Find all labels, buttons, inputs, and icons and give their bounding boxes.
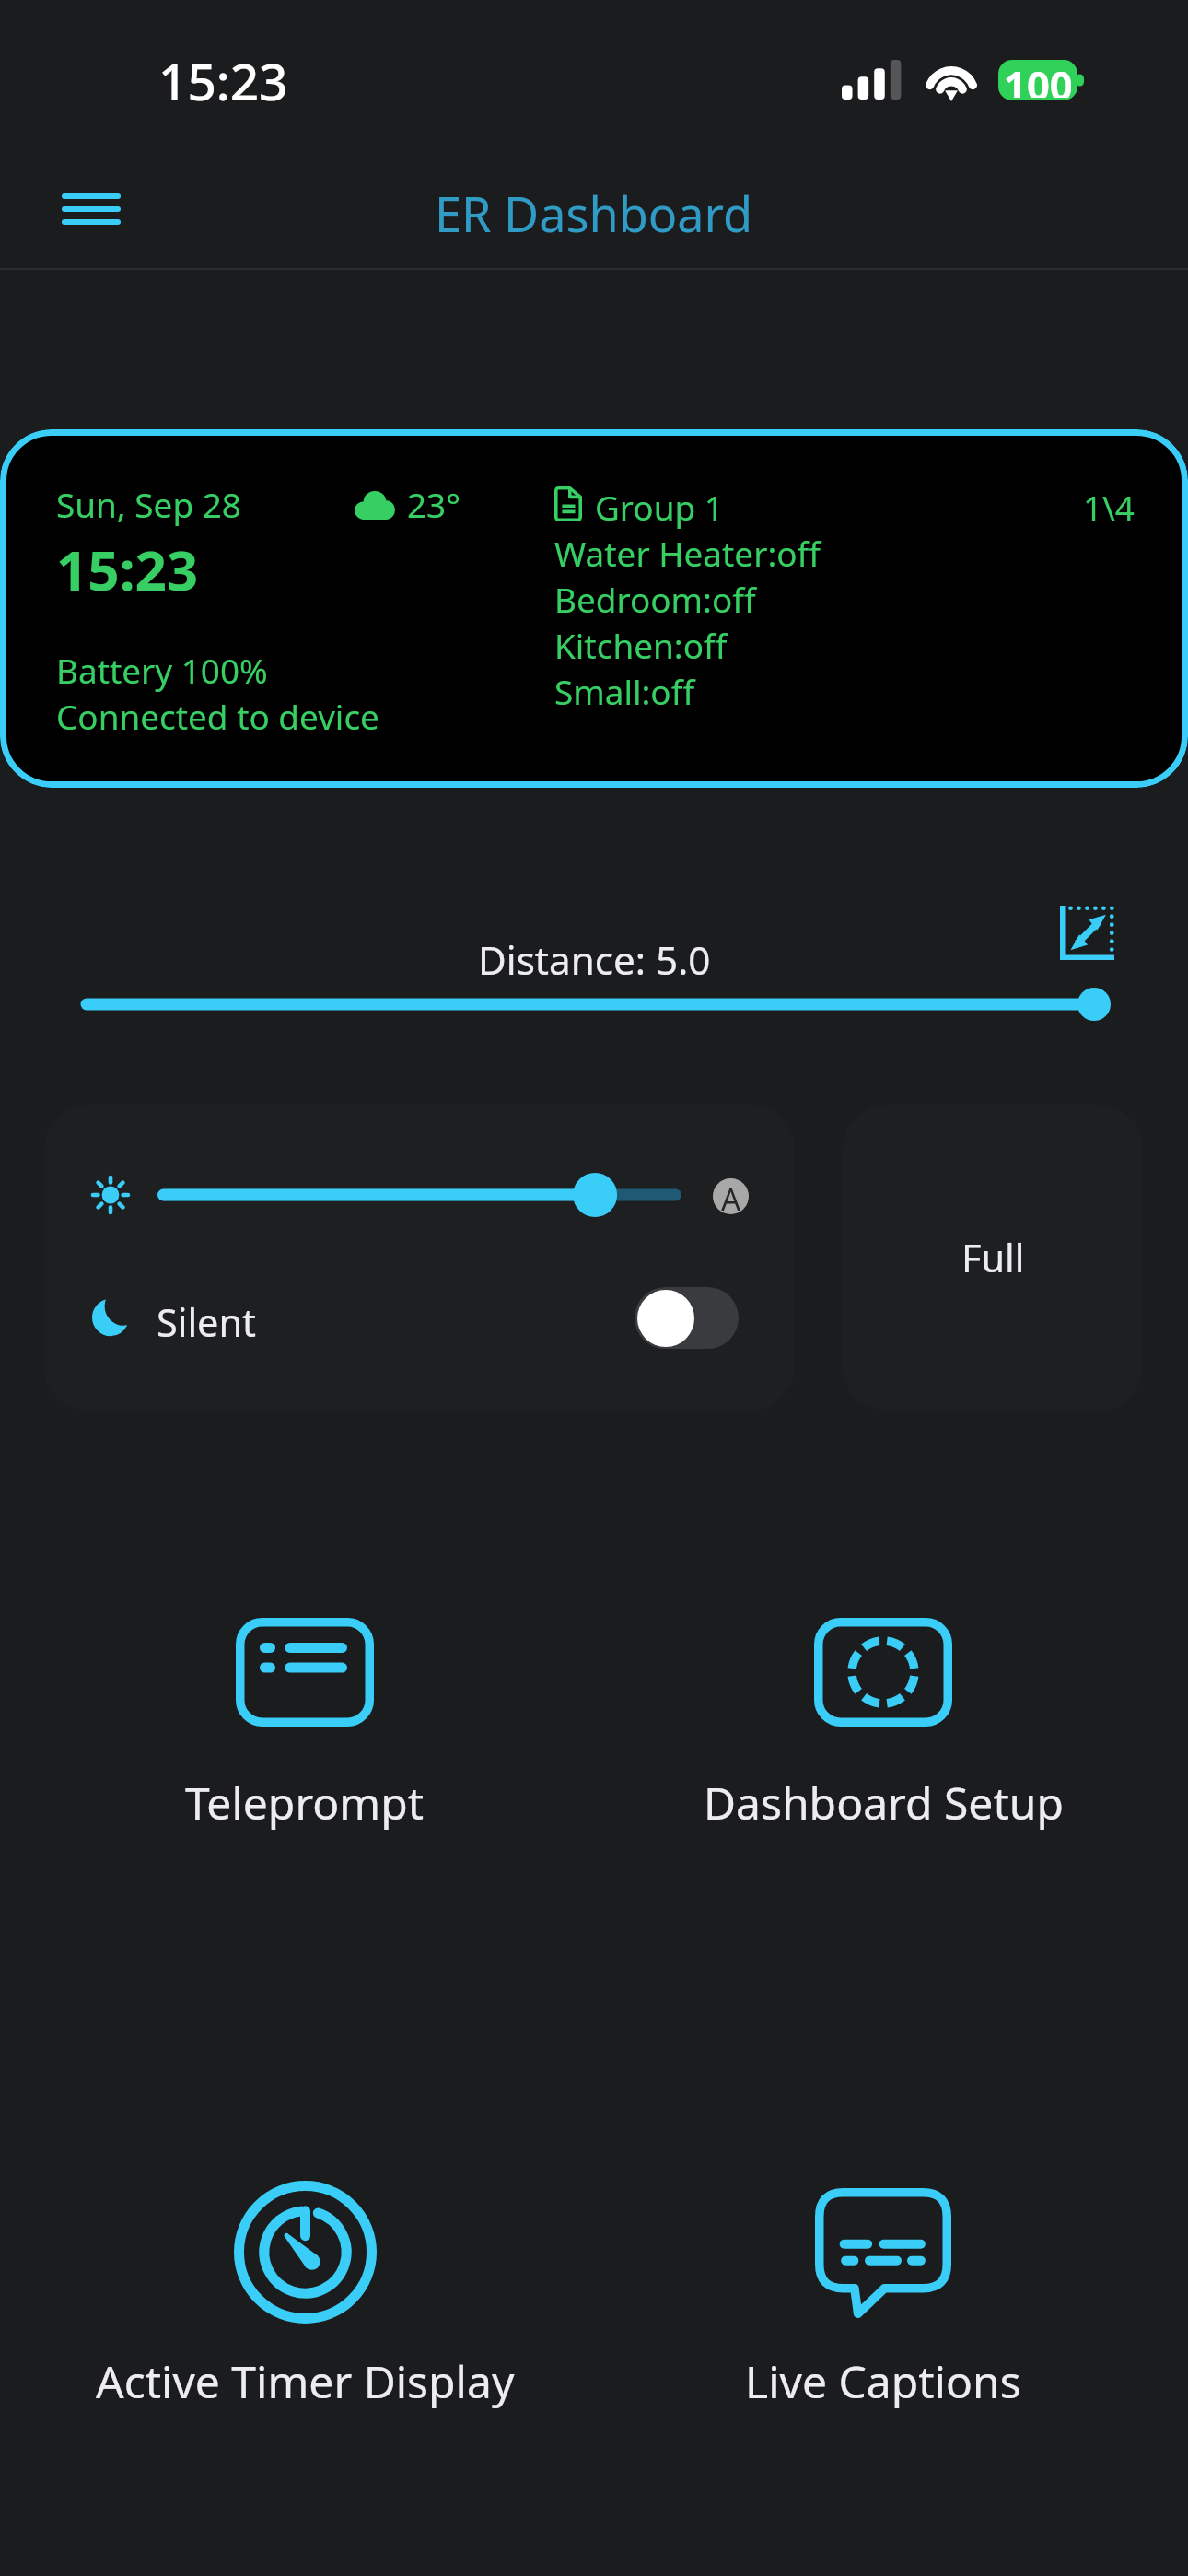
staticText: Active Timer Display: [96, 2351, 515, 2411]
staticText: Battery 100%: [56, 648, 268, 694]
staticText: Sun, Sep 28: [56, 482, 241, 528]
staticText: Water Heater:off: [554, 531, 821, 577]
staticText: Connected to device: [56, 694, 379, 740]
staticText: Bedroom:off: [554, 577, 756, 623]
staticText: Distance: 5.0: [478, 933, 711, 986]
button[interactable]: Brightness: [157, 1178, 681, 1212]
staticText: 100: [1004, 60, 1073, 98]
staticText: ER Dashboard: [435, 181, 753, 246]
staticText: Live Captions: [745, 2351, 1021, 2411]
staticText: 15:23: [158, 46, 288, 115]
button[interactable]: Expand: [1048, 894, 1125, 971]
button[interactable]: Distance slider: [87, 988, 1111, 1021]
button[interactable]: Live Captions: [594, 2181, 1172, 2411]
staticText: Kitchen:off: [554, 623, 728, 669]
staticText: Small:off: [554, 669, 695, 715]
button[interactable]: Auto brightness: [713, 1178, 749, 1214]
staticText: Teleprompt: [185, 1773, 425, 1832]
staticText: Group 1: [595, 485, 724, 531]
staticText: Silent: [157, 1296, 256, 1348]
staticText: A: [721, 1178, 741, 1214]
staticText: Full: [961, 1232, 1025, 1283]
staticText: 1\4: [1083, 485, 1135, 531]
staticText: 15:23: [56, 532, 199, 607]
button[interactable]: Sun, Sep 28: [0, 429, 1188, 788]
button[interactable]: Silent mode toggle: [635, 1287, 739, 1349]
button[interactable]: Menu: [35, 166, 147, 252]
staticText: 23°: [407, 482, 460, 528]
button[interactable]: Dashboard Setup: [594, 1618, 1172, 1832]
button[interactable]: Teleprompt: [16, 1618, 594, 1832]
staticText: Dashboard Setup: [704, 1773, 1064, 1832]
button[interactable]: Full: [843, 1105, 1143, 1411]
button[interactable]: Active Timer Display: [16, 2181, 594, 2411]
